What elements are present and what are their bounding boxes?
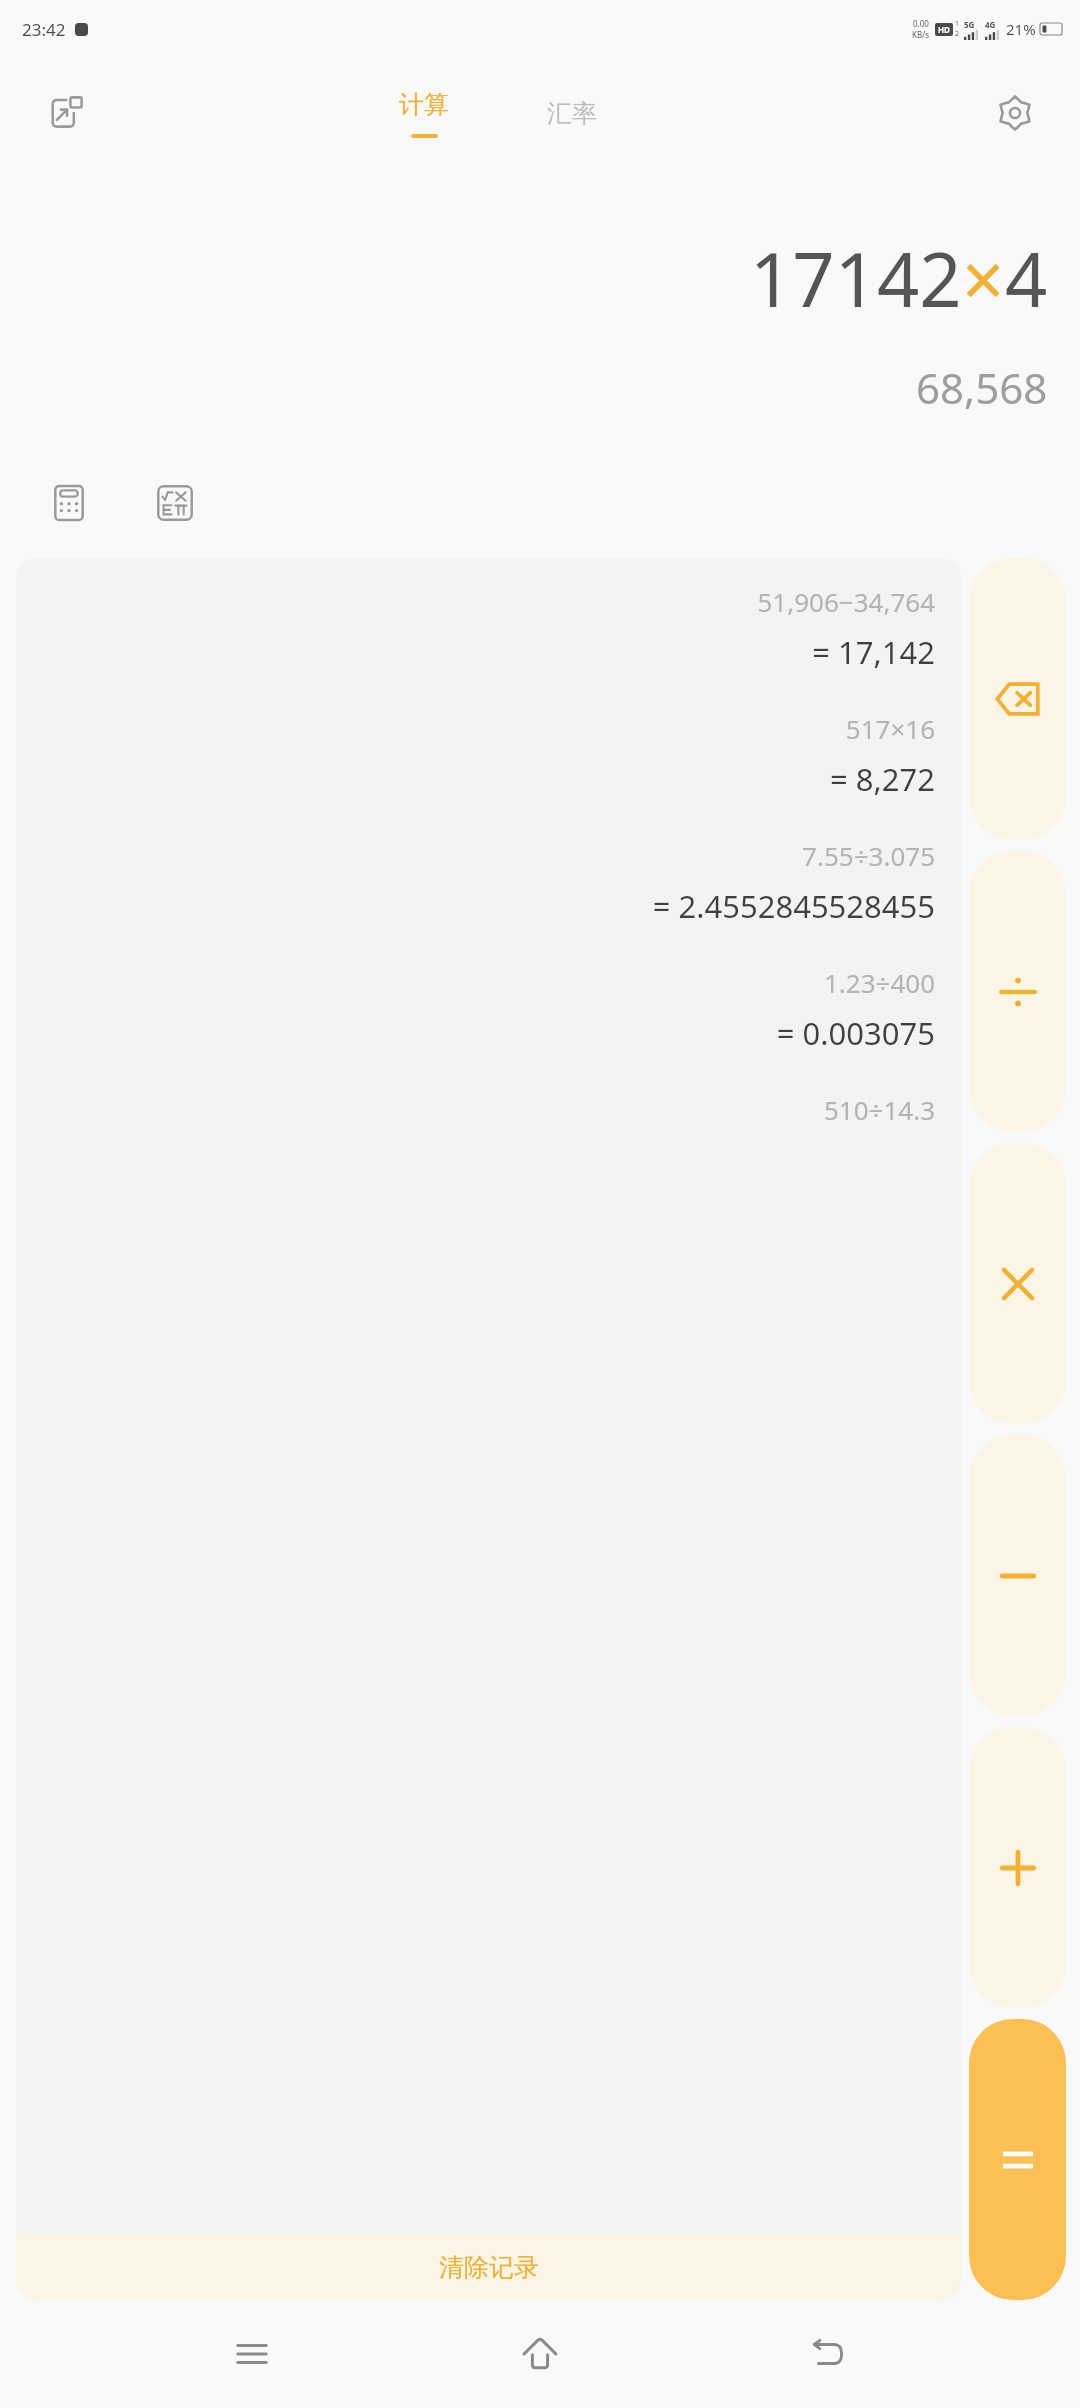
button[interactable]: Float window	[40, 86, 94, 140]
button[interactable]: Backspace	[969, 558, 1066, 840]
button[interactable]: Divide	[969, 851, 1066, 1132]
button[interactable]: 计算	[379, 83, 469, 144]
staticText: 17142	[750, 228, 962, 329]
button[interactable]: 清除记录	[16, 2234, 961, 2300]
button[interactable]: 汇率	[527, 92, 617, 135]
button[interactable]: 510÷14.3	[823, 1092, 935, 1127]
staticText: 5G	[964, 19, 975, 30]
staticText: 清除记录	[439, 2252, 539, 2283]
button[interactable]: = 8,272	[829, 758, 935, 800]
button[interactable]: Basic calculator	[40, 474, 98, 532]
button[interactable]: Settings	[988, 86, 1042, 140]
staticText: 68,568	[916, 359, 1048, 416]
button[interactable]: = 17,142	[812, 631, 935, 673]
staticText: 1	[955, 19, 960, 29]
staticText: 21%	[1006, 19, 1036, 39]
button[interactable]: = 2.4552845528455	[652, 885, 935, 927]
button[interactable]: 1.23÷400	[823, 965, 935, 1000]
staticText: 计算	[399, 89, 449, 120]
staticText: 2	[955, 29, 960, 39]
button[interactable]: Home	[504, 2318, 576, 2390]
button[interactable]: Plus	[969, 1727, 1066, 2008]
button[interactable]: 51,906−34,764	[757, 584, 935, 619]
button[interactable]: Scientific calculator	[146, 474, 204, 532]
button[interactable]: Recents	[216, 2318, 288, 2390]
staticText: 4G	[985, 19, 996, 30]
button[interactable]: Multiply	[969, 1143, 1066, 1424]
staticText: 汇率	[547, 98, 597, 129]
staticText: KB/s	[912, 29, 929, 40]
button[interactable]: Back	[792, 2318, 864, 2390]
staticText: 23:42	[22, 18, 66, 41]
button[interactable]: Equals	[969, 2019, 1066, 2300]
button[interactable]: Minus	[969, 1435, 1066, 1716]
staticText: 4	[1005, 228, 1048, 329]
button[interactable]: 7.55÷3.075	[802, 838, 935, 873]
staticText: 0.00	[913, 18, 929, 29]
button[interactable]: 517×16	[845, 711, 935, 746]
staticText: ×	[962, 228, 1005, 329]
button[interactable]: = 0.003075	[776, 1012, 935, 1054]
staticText: HD	[938, 24, 950, 35]
